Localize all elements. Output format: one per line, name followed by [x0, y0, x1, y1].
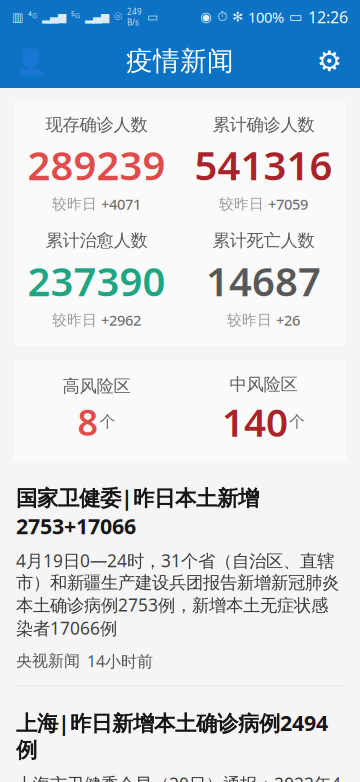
staticText: ◉: [200, 9, 212, 24]
staticText: 👤: [15, 46, 47, 75]
staticText: ⁵ᴳ: [71, 10, 80, 24]
staticText: ▭: [147, 10, 158, 24]
staticText: ▂▄▆: [85, 11, 109, 23]
staticText: +2962: [101, 310, 141, 330]
staticText: ▂▄▆: [42, 11, 66, 23]
button[interactable]: 国家卫健委|昨日本土新增2753+17066: [0, 461, 360, 687]
staticText: 个: [289, 412, 305, 432]
button[interactable]: 个人中心: [8, 37, 54, 85]
staticText: 高风险区: [62, 375, 130, 397]
staticText: ▭: [289, 9, 303, 25]
staticText: 较昨日: [219, 195, 264, 213]
staticText: 现存确诊人数: [45, 114, 147, 135]
staticText: 140: [222, 396, 288, 447]
staticText: 541316: [194, 138, 332, 191]
staticText: 上海|昨日新增本土确诊病例2494例: [16, 709, 328, 763]
staticText: ⌾: [114, 10, 122, 23]
staticText: +26: [276, 310, 300, 330]
staticText: ⏱: [217, 10, 227, 23]
staticText: ▥: [12, 10, 23, 24]
staticText: 中风险区: [229, 374, 297, 395]
staticText: 疫情新闻: [126, 45, 234, 77]
staticText: 237390: [27, 254, 165, 307]
staticText: 累计确诊人数: [212, 114, 314, 135]
staticText: 累计治愈人数: [45, 230, 147, 251]
staticText: 14小时前: [87, 650, 153, 672]
staticText: 央视新闻: [16, 651, 80, 671]
staticText: 较昨日: [52, 195, 97, 213]
staticText: ⁴ᴳ: [28, 10, 37, 24]
staticText: 累计死亡人数: [212, 230, 314, 251]
staticText: 12:26: [308, 6, 348, 28]
staticText: 上海市卫健委今早（20日）通报：2022年4月19日0—24时，新增本土新冠肺炎…: [16, 772, 344, 782]
staticText: 国家卫健委|昨日本土新增2753+17066: [16, 483, 259, 540]
staticText: 较昨日: [227, 311, 272, 329]
staticText: 较昨日: [52, 311, 97, 329]
staticText: 14687: [206, 254, 321, 307]
staticText: 249 B/s: [127, 6, 142, 28]
staticText: ⚙: [316, 45, 341, 77]
staticText: ✻: [232, 9, 243, 24]
staticText: 100%: [248, 7, 284, 27]
staticText: 个: [99, 412, 115, 432]
button[interactable]: 设置: [306, 37, 352, 85]
button[interactable]: 上海|昨日新增本土确诊病例2494例: [0, 687, 360, 782]
staticText: 8: [77, 398, 98, 446]
staticText: +4071: [101, 194, 141, 214]
staticText: 289239: [27, 138, 165, 191]
staticText: 4月19日0—24时，31个省（自治区、直辖市）和新疆生产建设兵团报告新增新冠肺…: [16, 549, 339, 639]
staticText: +7059: [268, 194, 308, 214]
